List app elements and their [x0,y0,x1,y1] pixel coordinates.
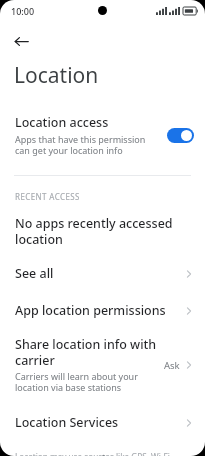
staticText: Location [14,61,99,90]
staticText: Location access [15,114,109,131]
staticText: See all [15,265,54,282]
staticText: App location permissions [15,302,166,319]
staticText: Apps that have this permission can get y… [15,133,162,157]
staticText: RECENT ACCESS [15,191,80,202]
button[interactable]: Location access [0,112,205,159]
button[interactable]: App location permissions [0,298,205,323]
staticText: No apps recently accessed location [15,215,183,247]
button[interactable]: Share location info with carrier [0,334,205,396]
staticText: Location may use sources like GPS, Wi-Fi… [15,451,190,456]
button[interactable]: Location Services [0,410,205,435]
button[interactable]: Location access toggle [167,128,194,143]
button[interactable]: Back [7,27,35,55]
staticText: Location Services [15,414,119,431]
staticText: Ask [164,359,180,372]
staticText: 10:00 [11,5,35,17]
button[interactable]: See all [0,261,205,286]
button[interactable]: No apps recently accessed location [0,211,205,251]
staticText: Carriers will learn about your location … [15,370,164,394]
staticText: Share location info with carrier [15,336,164,368]
